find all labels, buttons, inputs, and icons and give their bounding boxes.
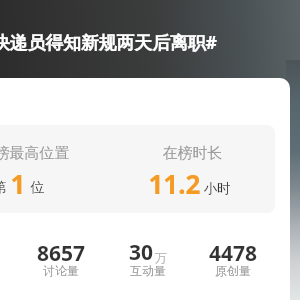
staticText: 位 — [30, 179, 44, 197]
staticText: 30 — [129, 238, 154, 264]
staticText: 在榜时长 — [162, 144, 222, 163]
staticText: 在榜最高位置 — [0, 144, 69, 163]
staticText: #快递员得知新规两天后离职# — [0, 30, 217, 54]
staticText: 互动量 — [130, 263, 166, 278]
staticText: 原创量 — [215, 263, 251, 278]
staticText: 第 — [0, 179, 6, 197]
staticText: 小时 — [203, 180, 230, 197]
staticText: 万 — [155, 250, 167, 265]
staticText: 1 — [10, 166, 25, 201]
staticText: 8657 — [37, 239, 86, 265]
staticText: 11.2 — [148, 166, 200, 201]
staticText: 讨论量 — [43, 263, 79, 278]
staticText: 4478 — [209, 239, 258, 265]
